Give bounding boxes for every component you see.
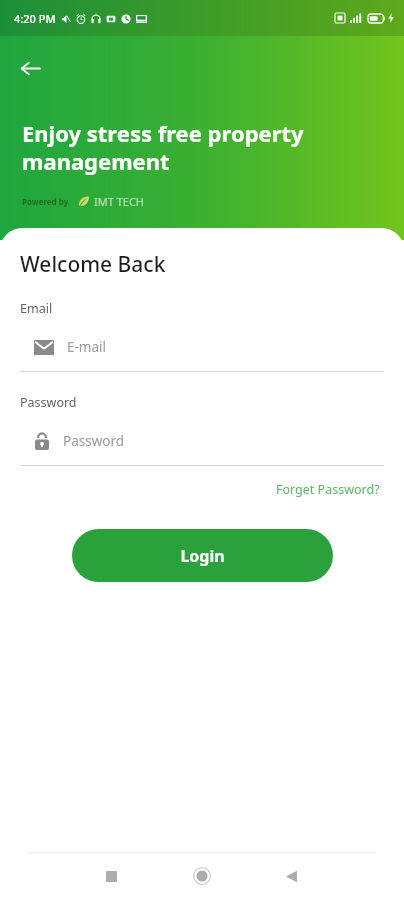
staticText: Forget Password? <box>276 481 380 498</box>
staticText: Email <box>20 300 53 317</box>
button[interactable]: Login <box>72 529 333 582</box>
staticText: Powered by <box>22 196 69 207</box>
staticText: Enjoy stress free property management <box>22 118 372 176</box>
button[interactable]: Recents <box>90 855 132 897</box>
staticText: IMT TECH <box>94 194 145 209</box>
button[interactable]: Forget Password? <box>272 478 384 501</box>
button[interactable]: Back <box>270 855 312 897</box>
staticText: Login <box>180 545 225 567</box>
staticText: Password <box>20 394 77 411</box>
button[interactable]: Back <box>10 48 50 88</box>
button[interactable]: Password <box>20 425 384 457</box>
staticText: 4:20 PM <box>14 11 56 26</box>
button[interactable]: E-mail <box>20 331 384 363</box>
staticText: E-mail <box>67 338 107 356</box>
staticText: Welcome Back <box>20 250 166 279</box>
staticText: Password <box>63 432 125 450</box>
button[interactable]: Home <box>181 855 223 897</box>
